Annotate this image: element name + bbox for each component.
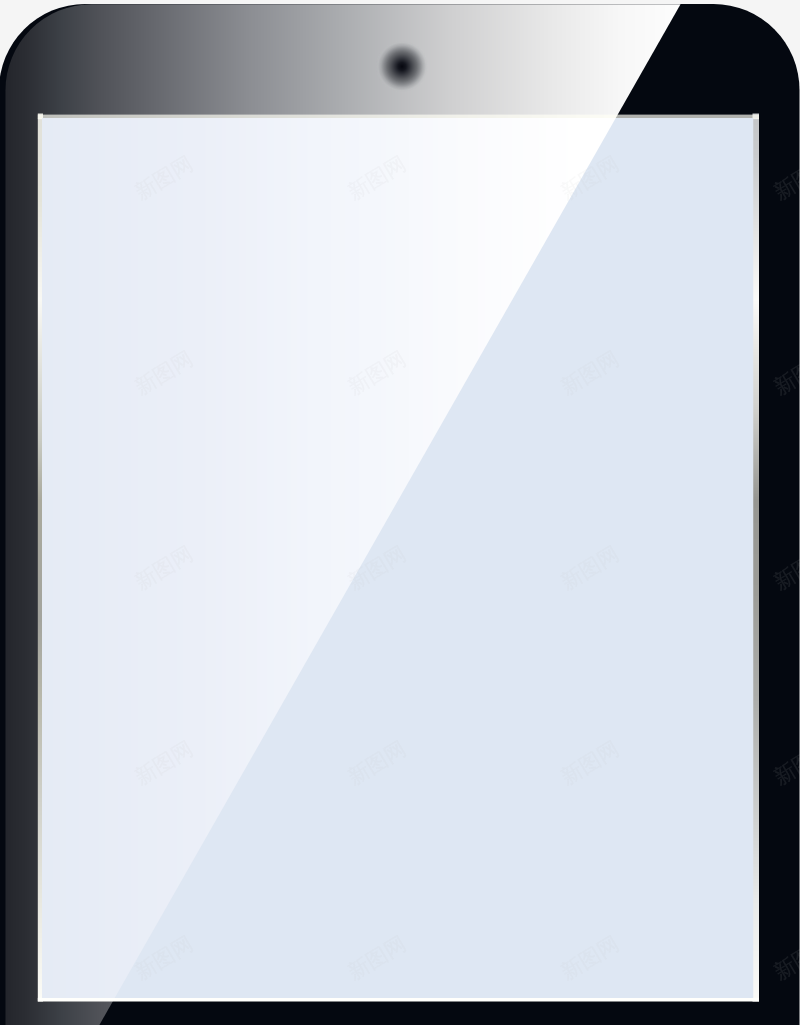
button[interactable]: Tablet device illustration (0, 0, 800, 1025)
